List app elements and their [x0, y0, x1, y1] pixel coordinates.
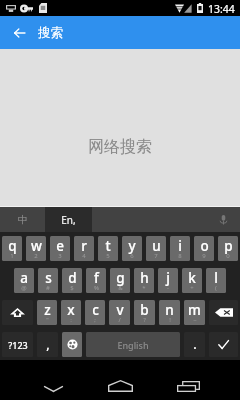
button[interactable]: a	[14, 268, 34, 293]
staticText: -	[167, 284, 169, 292]
staticText: ,	[46, 336, 50, 353]
button[interactable]: Change language	[62, 332, 82, 357]
staticText: !	[169, 316, 171, 324]
staticText: #	[46, 284, 50, 292]
staticText: d	[68, 269, 77, 287]
staticText: :	[70, 316, 72, 324]
staticText: n	[165, 301, 174, 319]
staticText: g	[116, 269, 125, 287]
button[interactable]: Backspace	[209, 300, 238, 325]
staticText: 0	[226, 252, 230, 260]
staticText: ;	[94, 316, 96, 324]
staticText: h	[140, 269, 149, 287]
staticText: p	[224, 237, 233, 255]
staticText: .	[193, 336, 197, 353]
staticText: ?	[143, 316, 146, 324]
staticText: %	[94, 284, 99, 292]
button[interactable]: Voice input	[206, 207, 240, 232]
staticText: (	[215, 284, 217, 292]
button[interactable]: Home	[90, 360, 150, 400]
button[interactable]: b	[134, 300, 155, 325]
staticText: 13:44	[208, 2, 235, 16]
button[interactable]: d	[62, 268, 82, 293]
button[interactable]: h	[134, 268, 154, 293]
staticText: En,	[61, 213, 76, 227]
staticText: ?123	[8, 339, 28, 351]
staticText: j	[166, 269, 170, 287]
button[interactable]: n	[159, 300, 180, 325]
staticText: o	[200, 237, 209, 255]
button[interactable]: u	[146, 236, 166, 261]
staticText: +	[190, 284, 194, 292]
staticText: u	[152, 237, 161, 255]
button[interactable]: Back	[0, 16, 38, 49]
button[interactable]: c	[85, 300, 105, 325]
staticText: 网络搜索	[88, 137, 152, 157]
button[interactable]: o	[194, 236, 214, 261]
staticText: 4	[82, 252, 86, 260]
staticText: i	[178, 237, 182, 255]
staticText: 3	[58, 252, 62, 260]
staticText: 5	[106, 252, 110, 260]
button[interactable]: k	[182, 268, 202, 293]
staticText: ~	[193, 316, 197, 324]
staticText: @	[21, 284, 27, 292]
button[interactable]: t	[98, 236, 118, 261]
button[interactable]: m	[184, 300, 205, 325]
staticText: 7	[154, 252, 158, 260]
staticText: l	[214, 269, 218, 287]
button[interactable]: z	[37, 300, 57, 325]
button[interactable]: i	[170, 236, 190, 261]
staticText: 6	[130, 252, 134, 260]
button[interactable]: x	[61, 300, 81, 325]
button[interactable]: e	[50, 236, 70, 261]
staticText: z	[44, 301, 51, 319]
button[interactable]: w	[26, 236, 46, 261]
button[interactable]: English	[86, 332, 180, 357]
staticText: y	[128, 237, 136, 255]
staticText: 1	[10, 252, 14, 260]
button[interactable]: v	[109, 300, 130, 325]
staticText: m	[188, 301, 201, 319]
staticText: w	[31, 237, 42, 255]
button[interactable]: ?123	[2, 332, 33, 357]
button[interactable]: s	[38, 268, 58, 293]
button[interactable]: j	[158, 268, 178, 293]
staticText: 搜索	[38, 25, 63, 41]
staticText: /	[118, 316, 121, 324]
staticText: q	[8, 237, 17, 255]
staticText: v	[116, 301, 124, 319]
button[interactable]: l	[206, 268, 226, 293]
staticText: s	[45, 269, 52, 287]
button[interactable]: Enter	[209, 332, 238, 357]
staticText: e	[56, 237, 64, 255]
button[interactable]: g	[110, 268, 130, 293]
staticText: 8	[178, 252, 182, 260]
staticText: 2	[34, 252, 38, 260]
staticText: k	[188, 269, 196, 287]
button[interactable]: f	[86, 268, 106, 293]
button[interactable]: Hide keyboard	[20, 360, 86, 400]
button[interactable]: En,	[45, 207, 92, 232]
button[interactable]: 中	[0, 207, 45, 232]
button[interactable]: y	[122, 236, 142, 261]
staticText: c	[92, 301, 99, 319]
staticText: b	[140, 301, 149, 319]
staticText: $	[70, 284, 74, 292]
staticText: "	[46, 316, 49, 324]
staticText: English	[117, 339, 149, 351]
staticText: 9	[202, 252, 206, 260]
staticText: &	[118, 284, 123, 292]
staticText: r	[81, 237, 87, 255]
button[interactable]: Recents	[158, 360, 218, 400]
staticText: *	[142, 284, 146, 292]
staticText: a	[20, 269, 28, 287]
staticText: t	[105, 237, 111, 255]
button[interactable]: Shift	[2, 300, 33, 325]
button[interactable]: ,	[37, 332, 58, 357]
button[interactable]: .	[184, 332, 205, 357]
button[interactable]: r	[74, 236, 94, 261]
button[interactable]: q	[2, 236, 22, 261]
button[interactable]: p	[218, 236, 238, 261]
staticText: 中	[18, 213, 28, 226]
